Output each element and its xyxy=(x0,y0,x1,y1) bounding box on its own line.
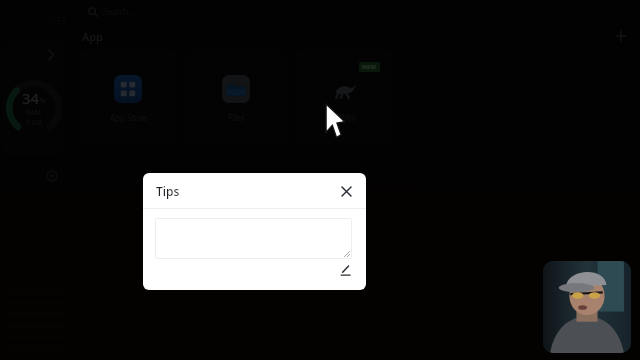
button[interactable]: Add app xyxy=(614,29,628,43)
button[interactable]: Files xyxy=(186,50,286,146)
button[interactable]: Close xyxy=(338,183,354,199)
staticText: 34 xyxy=(22,88,40,108)
button[interactable] xyxy=(155,218,352,259)
button[interactable] xyxy=(543,261,631,353)
button[interactable]: App Store xyxy=(78,50,178,146)
staticText: App xyxy=(82,29,103,44)
staticText: % xyxy=(40,96,46,106)
staticText: Search... xyxy=(103,6,135,17)
button[interactable]: NEW xyxy=(294,50,394,146)
button[interactable]: More xyxy=(2,40,66,155)
staticText: Rabbit xyxy=(332,112,357,123)
staticText: RAM xyxy=(26,108,42,118)
button[interactable]: Search... xyxy=(86,4,137,19)
staticText: App Store xyxy=(110,112,147,123)
other: More xyxy=(46,50,56,60)
staticText: NEW xyxy=(362,63,377,71)
staticText: 2 GB xyxy=(26,118,42,128)
staticText: Files xyxy=(228,112,245,123)
button[interactable]: Settings xyxy=(46,170,58,182)
staticText: Tips xyxy=(156,183,180,199)
button[interactable]: Edit xyxy=(338,263,352,277)
